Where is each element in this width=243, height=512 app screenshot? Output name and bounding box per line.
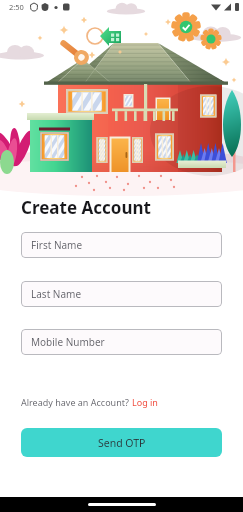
button[interactable]: Last Name	[21, 281, 222, 307]
staticText: Mobile Number	[31, 335, 105, 349]
staticText: Send OTP	[98, 436, 146, 450]
button[interactable]: Send OTP	[21, 428, 222, 457]
staticText: Already have an Account?	[21, 396, 132, 408]
staticText: 2:50	[9, 2, 24, 12]
button[interactable]: First Name	[21, 232, 222, 258]
staticText: First Name	[31, 238, 83, 252]
button[interactable]: Mobile Number	[21, 329, 222, 355]
staticText: Last Name	[31, 287, 82, 301]
staticText: Create Account	[21, 196, 151, 219]
button[interactable]: Log in	[132, 396, 158, 408]
